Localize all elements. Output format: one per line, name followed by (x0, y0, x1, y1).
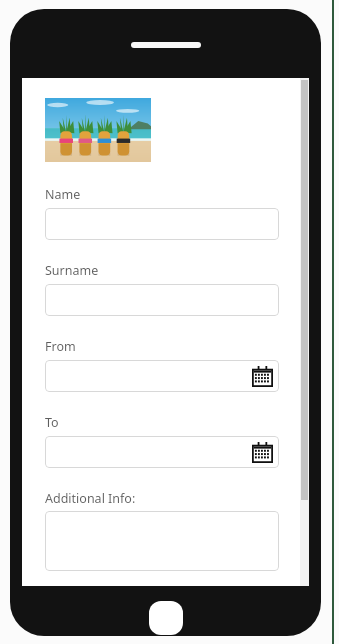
button[interactable]: Beach photo with pineapples (45, 98, 151, 162)
staticText: From (45, 338, 76, 355)
button[interactable]: Pick date (252, 442, 273, 463)
staticText: Additional Info: (45, 490, 136, 507)
staticText: To (45, 414, 59, 431)
button[interactable]: Home (149, 601, 183, 635)
button[interactable]: Name (45, 208, 279, 240)
button[interactable]: To date (45, 436, 279, 468)
staticText: Surname (45, 262, 99, 279)
button[interactable]: Surname (45, 284, 279, 316)
button[interactable]: Pick date (252, 366, 273, 387)
button[interactable]: Additional Info (45, 511, 279, 571)
staticText: Name (45, 186, 81, 203)
button[interactable]: From date (45, 360, 279, 392)
